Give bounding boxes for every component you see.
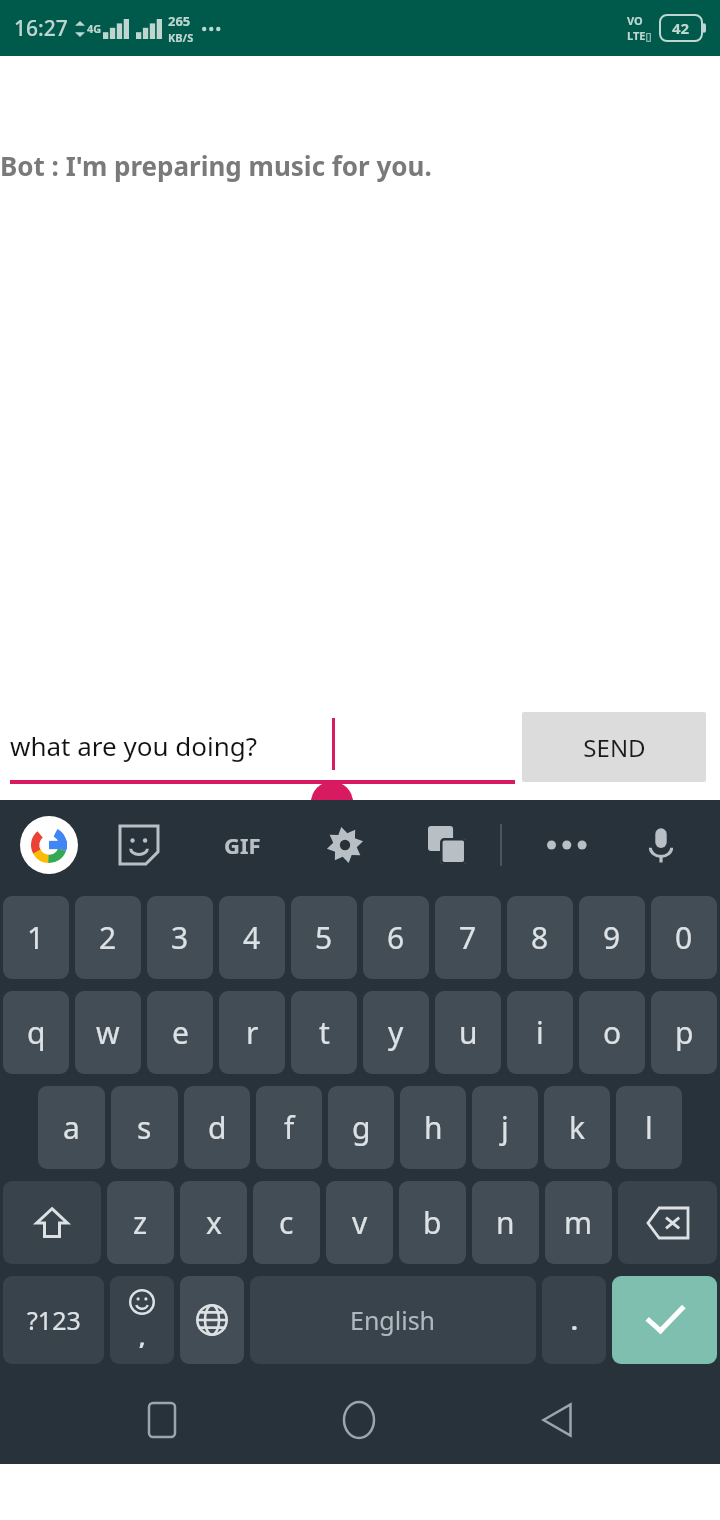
staticText: m	[564, 1202, 593, 1243]
staticText: 7	[459, 917, 477, 958]
button[interactable]: Change language	[180, 1276, 244, 1364]
button[interactable]: Home	[324, 1385, 394, 1455]
button[interactable]: Stickers	[112, 818, 166, 872]
staticText: q	[27, 1012, 46, 1053]
staticText: l	[645, 1107, 653, 1148]
button[interactable]: r	[219, 991, 285, 1074]
button[interactable]: 3	[147, 896, 213, 979]
button[interactable]: GIF	[214, 817, 270, 873]
button[interactable]: i	[507, 991, 573, 1074]
staticText: 1	[27, 917, 45, 958]
button[interactable]: 2	[75, 896, 141, 979]
button[interactable]: m	[545, 1181, 612, 1264]
staticText: GIF	[224, 830, 261, 860]
button[interactable]: ?123	[3, 1276, 104, 1364]
staticText: t	[319, 1012, 330, 1053]
staticText: KB/S	[168, 30, 194, 45]
button[interactable]: j	[472, 1086, 538, 1169]
button[interactable]: v	[326, 1181, 393, 1264]
button[interactable]: x	[180, 1181, 247, 1264]
staticText: h	[424, 1107, 443, 1148]
staticText: 3	[171, 917, 189, 958]
staticText: o	[603, 1012, 622, 1053]
button[interactable]: 9	[579, 896, 645, 979]
staticText: z	[133, 1202, 148, 1243]
button[interactable]: u	[435, 991, 501, 1074]
staticText: 2	[99, 917, 117, 958]
staticText: i	[536, 1012, 544, 1053]
button[interactable]: n	[472, 1181, 539, 1264]
button[interactable]: Voice input	[634, 818, 688, 872]
button[interactable]: h	[400, 1086, 466, 1169]
button[interactable]: Enter	[612, 1276, 717, 1364]
button[interactable]: Google	[20, 816, 78, 874]
staticText: b	[423, 1202, 442, 1243]
button[interactable]: Translate	[420, 818, 474, 872]
staticText: c	[279, 1202, 294, 1243]
staticText: j	[501, 1107, 509, 1148]
staticText: d	[208, 1107, 227, 1148]
staticText: SEND	[583, 731, 646, 764]
button[interactable]: 5	[291, 896, 357, 979]
staticText: k	[569, 1107, 586, 1148]
button[interactable]: Emoji and comma	[110, 1276, 174, 1364]
button[interactable]: 8	[507, 896, 573, 979]
staticText: Bot : I'm preparing music for you.	[0, 148, 432, 183]
staticText: 9	[603, 917, 621, 958]
button[interactable]: l	[616, 1086, 682, 1169]
button[interactable]: p	[651, 991, 717, 1074]
button[interactable]: f	[256, 1086, 322, 1169]
button[interactable]: Settings	[318, 818, 372, 872]
button[interactable]: 6	[363, 896, 429, 979]
button[interactable]: y	[363, 991, 429, 1074]
staticText: e	[172, 1012, 189, 1053]
staticText: 42	[672, 18, 690, 38]
button[interactable]: Back	[522, 1385, 592, 1455]
button[interactable]: o	[579, 991, 645, 1074]
staticText: 6	[387, 917, 405, 958]
staticText: 8	[531, 917, 549, 958]
staticText: .	[571, 1304, 578, 1337]
staticText: 4	[243, 917, 261, 958]
staticText: n	[496, 1202, 515, 1243]
staticText: w	[96, 1012, 120, 1053]
button[interactable]: Shift	[3, 1181, 101, 1264]
staticText: f	[284, 1107, 295, 1148]
button[interactable]: More options	[540, 818, 594, 872]
button[interactable]: .	[542, 1276, 606, 1364]
button[interactable]: Backspace	[618, 1181, 717, 1264]
staticText: r	[246, 1012, 259, 1053]
button[interactable]: 7	[435, 896, 501, 979]
button[interactable]: English	[250, 1276, 536, 1364]
button[interactable]: 0	[651, 896, 717, 979]
staticText: p	[675, 1012, 694, 1053]
button[interactable]: 1	[3, 896, 69, 979]
staticText: v	[352, 1202, 368, 1243]
button[interactable]: q	[3, 991, 69, 1074]
button[interactable]: t	[291, 991, 357, 1074]
button[interactable]: w	[75, 991, 141, 1074]
staticText: VO	[627, 13, 643, 28]
staticText: what are you doing?	[10, 728, 258, 763]
staticText: u	[459, 1012, 478, 1053]
button[interactable]: what are you doing?	[10, 712, 515, 786]
button[interactable]: Recent apps	[127, 1385, 197, 1455]
button[interactable]: k	[544, 1086, 610, 1169]
staticText: ,	[139, 1321, 146, 1351]
button[interactable]: s	[111, 1086, 178, 1169]
button[interactable]: e	[147, 991, 213, 1074]
button[interactable]: g	[328, 1086, 394, 1169]
button[interactable]: SEND	[522, 712, 706, 782]
staticText: a	[63, 1107, 80, 1148]
staticText: LTE▯	[627, 28, 652, 43]
button[interactable]: d	[184, 1086, 250, 1169]
button[interactable]: 4	[219, 896, 285, 979]
staticText: English	[350, 1303, 436, 1337]
staticText: s	[137, 1107, 152, 1148]
button[interactable]: b	[399, 1181, 466, 1264]
button[interactable]: z	[107, 1181, 174, 1264]
staticText: ?123	[27, 1303, 81, 1337]
staticText: 16:27	[14, 14, 68, 43]
button[interactable]: a	[38, 1086, 105, 1169]
button[interactable]: c	[253, 1181, 320, 1264]
